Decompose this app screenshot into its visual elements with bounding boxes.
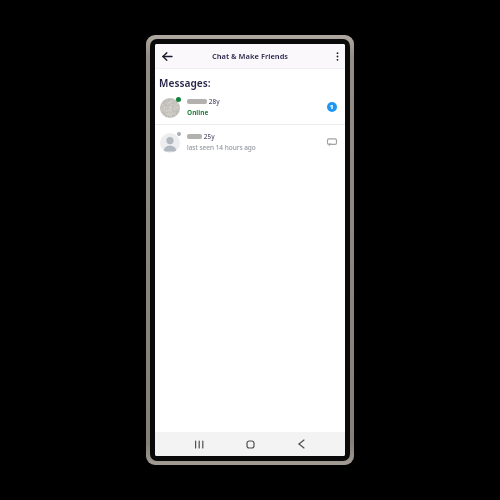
- button[interactable]: [192, 437, 206, 451]
- staticText: last seen 14 hours ago: [187, 143, 256, 152]
- button[interactable]: 28y: [155, 93, 345, 121]
- button[interactable]: [243, 437, 257, 451]
- button[interactable]: [160, 49, 174, 63]
- button[interactable]: [294, 437, 308, 451]
- staticText: Messages:: [159, 76, 211, 90]
- staticText: Chat & Make Friends: [212, 51, 289, 61]
- button[interactable]: [331, 50, 343, 62]
- staticText: 25y: [202, 132, 215, 141]
- staticText: 28y: [207, 97, 220, 106]
- button[interactable]: 25y: [155, 128, 345, 156]
- staticText: Online: [187, 108, 209, 117]
- staticText: 1: [330, 103, 334, 111]
